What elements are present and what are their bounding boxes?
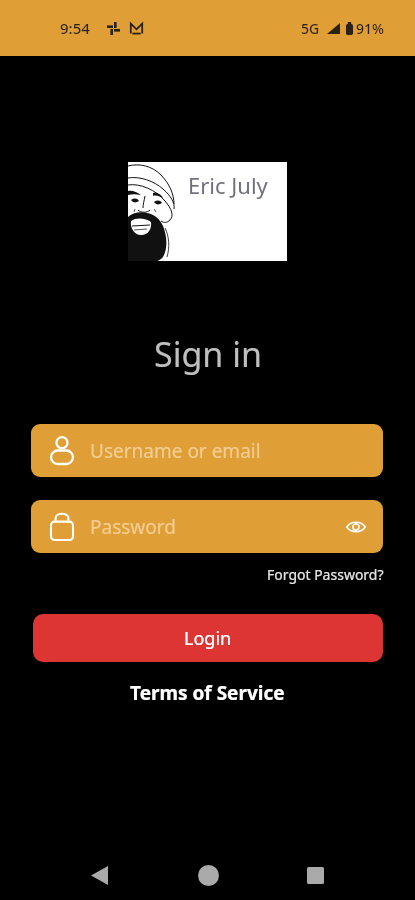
button[interactable]: Terms of Service	[124, 675, 291, 711]
staticText: 91%	[356, 19, 384, 38]
button[interactable]: Back	[75, 851, 123, 899]
staticText: Password	[90, 514, 176, 540]
button[interactable]: Forgot Password?	[265, 562, 386, 587]
staticText: Forgot Password?	[267, 565, 384, 584]
button[interactable]: Password	[31, 500, 383, 553]
staticText: Eric July	[188, 170, 268, 200]
button[interactable]: Username or email	[31, 424, 383, 477]
staticText: Terms of Service	[130, 680, 285, 706]
button[interactable]: Show password	[344, 515, 368, 539]
staticText: 9:54	[60, 18, 90, 38]
staticText: Sign in	[154, 331, 262, 377]
staticText: 5G	[301, 19, 320, 38]
button[interactable]: Recent apps	[291, 851, 339, 899]
button[interactable]: Home	[184, 851, 232, 899]
staticText: Login	[184, 626, 232, 651]
staticText: Username or email	[90, 438, 261, 464]
button[interactable]: Login	[33, 614, 383, 662]
